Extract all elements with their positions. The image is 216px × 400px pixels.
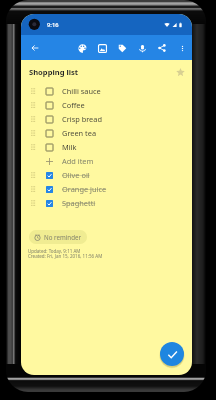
button[interactable]: Done [160,342,184,366]
staticText: Milk [62,142,77,152]
staticText: Orange juice [62,184,107,194]
button[interactable]: More options [172,38,192,58]
staticText: Chilli sauce [62,86,101,96]
button[interactable]: Label [112,38,132,58]
button[interactable]: Olive oil [21,168,192,182]
button[interactable]: Spaghetti [21,196,192,210]
staticText: No reminder [44,233,82,241]
staticText: Crisp bread [62,114,102,124]
button[interactable]: Back [25,38,45,58]
button[interactable]: Pin [173,65,187,79]
staticText: 9:16 [47,21,59,29]
button[interactable]: Color [72,38,92,58]
staticText: Coffee [62,100,85,110]
button[interactable]: Share [152,38,172,58]
staticText: Add item [62,156,94,166]
staticText: Spaghetti [62,198,96,208]
staticText: Olive oil [62,170,90,180]
button[interactable]: Green tea [21,126,192,140]
button[interactable]: Voice [132,38,152,58]
button[interactable]: Add item [21,154,192,168]
button[interactable]: Orange juice [21,182,192,196]
staticText: Updated: Today, 9:11 AM Created: Fri, Ja… [28,248,103,260]
button[interactable]: Image [92,38,112,58]
staticText: Shopping list [29,67,79,77]
button[interactable]: Chilli sauce [21,84,192,98]
button[interactable]: No reminder [29,230,87,244]
staticText: Green tea [62,128,97,138]
button[interactable]: Milk [21,140,192,154]
button[interactable]: Crisp bread [21,112,192,126]
button[interactable]: Coffee [21,98,192,112]
